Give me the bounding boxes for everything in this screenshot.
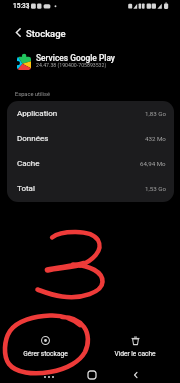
button[interactable]: Cache bbox=[7, 151, 174, 176]
staticText: Cache bbox=[17, 159, 40, 168]
staticText: Données bbox=[17, 134, 49, 143]
staticText: 24.47.38 (190400-705893532) bbox=[36, 62, 107, 68]
staticText: 1,53 Go bbox=[145, 185, 166, 192]
button[interactable]: Application bbox=[7, 101, 174, 126]
staticText: 15:33 bbox=[13, 2, 30, 10]
staticText: Stockage bbox=[26, 28, 66, 39]
button[interactable]: Home bbox=[77, 364, 106, 383]
staticText: Application bbox=[17, 109, 58, 118]
staticText: Services Google Play bbox=[36, 53, 115, 63]
staticText: 432 Mo bbox=[145, 135, 166, 142]
staticText: Vider le cache bbox=[114, 350, 156, 358]
button[interactable]: Gérer stockage bbox=[2, 330, 88, 358]
button[interactable]: Recent apps bbox=[34, 364, 63, 383]
button[interactable]: Données bbox=[7, 126, 174, 151]
staticText: 64,94 Mo bbox=[140, 160, 166, 167]
button[interactable]: Vider le cache bbox=[92, 330, 178, 358]
button[interactable]: Back bbox=[121, 364, 150, 383]
staticText: Espace utilisé bbox=[15, 91, 50, 98]
button[interactable]: Total bbox=[7, 176, 174, 201]
staticText: Total bbox=[17, 184, 35, 193]
staticText: Gérer stockage bbox=[23, 350, 68, 358]
button[interactable]: Back bbox=[6, 20, 30, 44]
staticText: 1,83 Go bbox=[145, 110, 166, 117]
